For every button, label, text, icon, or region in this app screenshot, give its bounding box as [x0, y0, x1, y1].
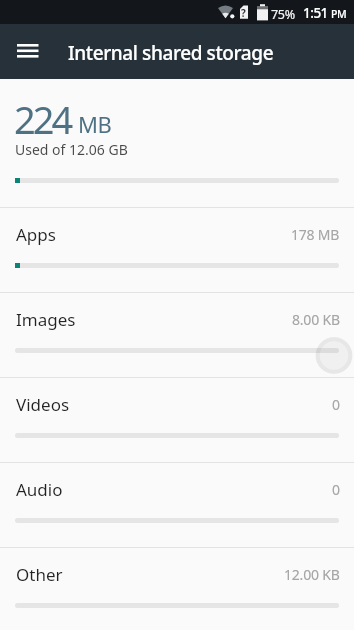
staticText: Images	[16, 308, 76, 330]
staticText: Internal shared storage	[68, 40, 274, 66]
staticText: Audio	[16, 478, 63, 500]
button[interactable]: Images	[16, 308, 340, 330]
staticText: 12.00 KB	[284, 565, 340, 584]
staticText: 0	[332, 395, 340, 414]
staticText: Used of 12.06 GB	[15, 140, 128, 159]
staticText: Other	[16, 563, 63, 585]
staticText: 75%	[271, 6, 295, 23]
staticText: Videos	[16, 393, 70, 415]
staticText: PM	[331, 7, 347, 21]
staticText: 1:51	[303, 4, 328, 22]
staticText: 0	[332, 480, 340, 499]
staticText: MB	[78, 109, 112, 139]
staticText: 224	[14, 93, 71, 145]
staticText: 8.00 KB	[292, 310, 340, 329]
button[interactable]: Videos	[16, 393, 340, 415]
staticText: Apps	[16, 223, 56, 245]
button[interactable]: Other	[16, 563, 340, 585]
button[interactable]: Apps	[16, 223, 340, 245]
button[interactable]: Audio	[16, 478, 340, 500]
staticText: 178 MB	[291, 225, 340, 244]
staticText: ?	[241, 6, 246, 20]
button[interactable]	[0, 24, 56, 79]
